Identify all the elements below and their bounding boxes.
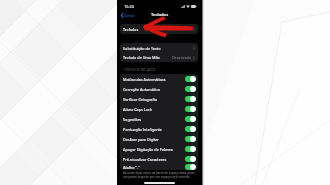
staticText: Geral: [124, 13, 135, 18]
staticText: Atalho ".": [123, 165, 140, 170]
staticText: Pontuação Inteligente: [123, 127, 162, 132]
button[interactable]: Teclados: [120, 24, 198, 34]
staticText: Maiúsculas Automáticas: [123, 77, 166, 82]
staticText: Desativado: [172, 55, 191, 60]
button[interactable]: Teclado de Uma Mão: [120, 53, 198, 62]
button[interactable]: Deslizar para Digitar: [120, 134, 198, 144]
staticText: 16:24: [124, 4, 134, 9]
staticText: Ativar Caps Lock: [123, 107, 152, 112]
button[interactable]: Ativar Caps Lock: [120, 104, 198, 114]
button[interactable]: Substituição de Texto: [120, 43, 198, 53]
staticText: Sugestões: [123, 117, 142, 122]
staticText: Deslizar para Digitar: [123, 137, 159, 142]
button[interactable]: Maiúsculas Automáticas: [120, 74, 198, 84]
button[interactable]: Verificar Ortografia: [120, 94, 198, 104]
button[interactable]: Correção Automática: [120, 84, 198, 94]
other: Arrow pointing to Teclados: [117, 0, 202, 185]
staticText: Substituição de Texto: [123, 46, 161, 51]
staticText: Teclados: [123, 27, 139, 32]
staticText: Apagar Digitação de Palavra: [123, 147, 173, 152]
staticText: TODOS OS TECLADOS: [124, 68, 156, 72]
staticText: Teclado de Uma Mão: [123, 55, 160, 60]
button[interactable]: Pré-visualizar Caracteres: [120, 154, 198, 164]
button[interactable]: Apagar Digitação de Palavra: [120, 144, 198, 154]
button[interactable]: Geral: [120, 12, 136, 19]
staticText: Pré-visualizar Caracteres: [123, 157, 167, 162]
staticText: Correção Automática: [123, 87, 161, 92]
staticText: Teclados: [151, 12, 169, 18]
button[interactable]: Pontuação Inteligente: [120, 124, 198, 134]
staticText: Verificar Ortografia: [123, 97, 157, 102]
button[interactable]: Sugestões: [120, 114, 198, 124]
button[interactable]: Atalho ".": [120, 164, 198, 170]
staticText: Ao tocar duas vezes na barra de espaço d…: [123, 171, 197, 179]
